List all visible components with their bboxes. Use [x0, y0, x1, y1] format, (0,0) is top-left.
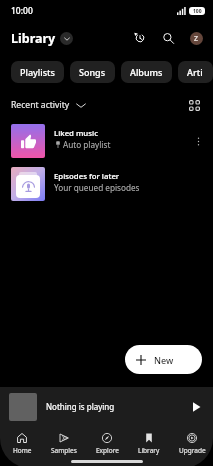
button[interactable]: Episodes for later: [0, 162, 213, 205]
button[interactable]: Account: [182, 24, 210, 52]
staticText: Your queued episodes: [54, 182, 140, 193]
staticText: Playlists: [20, 66, 55, 78]
staticText: Library: [138, 446, 160, 455]
staticText: Liked music: [54, 128, 98, 139]
staticText: 100: [193, 8, 202, 15]
staticText: Home: [13, 446, 32, 455]
staticText: Upgrade: [179, 446, 206, 455]
button[interactable]: Home: [1, 433, 43, 455]
staticText: 10:00: [11, 5, 33, 17]
button[interactable]: Albums: [121, 61, 172, 83]
staticText: Library: [11, 30, 56, 47]
button[interactable]: Songs: [70, 61, 115, 83]
button[interactable]: Explore: [86, 433, 128, 455]
staticText: Z: [194, 34, 199, 44]
button[interactable]: Liked music: [0, 119, 213, 162]
staticText: Recent activity: [11, 99, 70, 111]
staticText: Albums: [130, 66, 163, 78]
button[interactable]: Recent activity: [0, 99, 92, 111]
staticText: Artists: [187, 66, 204, 78]
button[interactable]: Grid view: [186, 97, 202, 113]
button[interactable]: Artists: [178, 61, 213, 83]
button[interactable]: History: [126, 24, 154, 52]
staticText: Nothing is playing: [46, 401, 187, 412]
staticText: Explore: [96, 446, 119, 455]
staticText: Auto playlist: [63, 139, 111, 150]
button[interactable]: Change library view: [60, 32, 73, 45]
button[interactable]: Play: [187, 398, 205, 416]
button[interactable]: Upgrade: [171, 433, 213, 455]
staticText: Songs: [79, 66, 106, 78]
staticText: New: [154, 354, 174, 366]
button[interactable]: Search: [154, 24, 182, 52]
staticText: Episodes for later: [54, 171, 120, 182]
button[interactable]: Library: [128, 433, 170, 455]
button[interactable]: Nothing is playing: [0, 388, 213, 425]
button[interactable]: New: [125, 345, 202, 374]
button[interactable]: More options: [189, 132, 207, 150]
button[interactable]: Samples: [43, 433, 85, 455]
button[interactable]: Playlists: [11, 61, 64, 83]
staticText: Samples: [51, 446, 77, 455]
